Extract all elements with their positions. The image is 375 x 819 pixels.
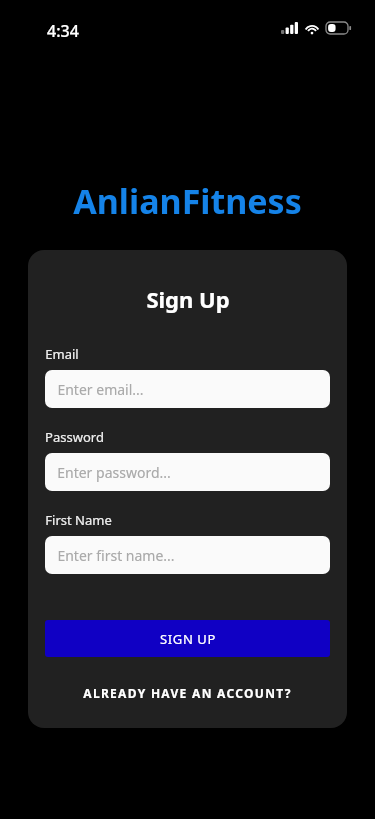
staticText: SIGN UP bbox=[160, 630, 216, 648]
staticText: Sign Up bbox=[146, 284, 230, 314]
button[interactable]: Enter first name... bbox=[45, 536, 330, 574]
button[interactable]: Enter password... bbox=[45, 453, 330, 491]
staticText: AnlianFitness bbox=[73, 178, 302, 224]
button[interactable]: SIGN UP bbox=[45, 620, 330, 657]
staticText: Enter first name... bbox=[57, 546, 175, 565]
button[interactable]: ALREADY HAVE AN ACCOUNT? bbox=[45, 678, 330, 708]
staticText: Enter email... bbox=[57, 380, 144, 399]
staticText: Password bbox=[45, 428, 104, 446]
staticText: First Name bbox=[45, 511, 112, 529]
staticText: Email bbox=[45, 345, 79, 363]
staticText: 4:34 bbox=[47, 20, 79, 42]
staticText: ALREADY HAVE AN ACCOUNT? bbox=[83, 685, 292, 701]
button[interactable]: Enter email... bbox=[45, 370, 330, 408]
staticText: Enter password... bbox=[57, 463, 171, 482]
